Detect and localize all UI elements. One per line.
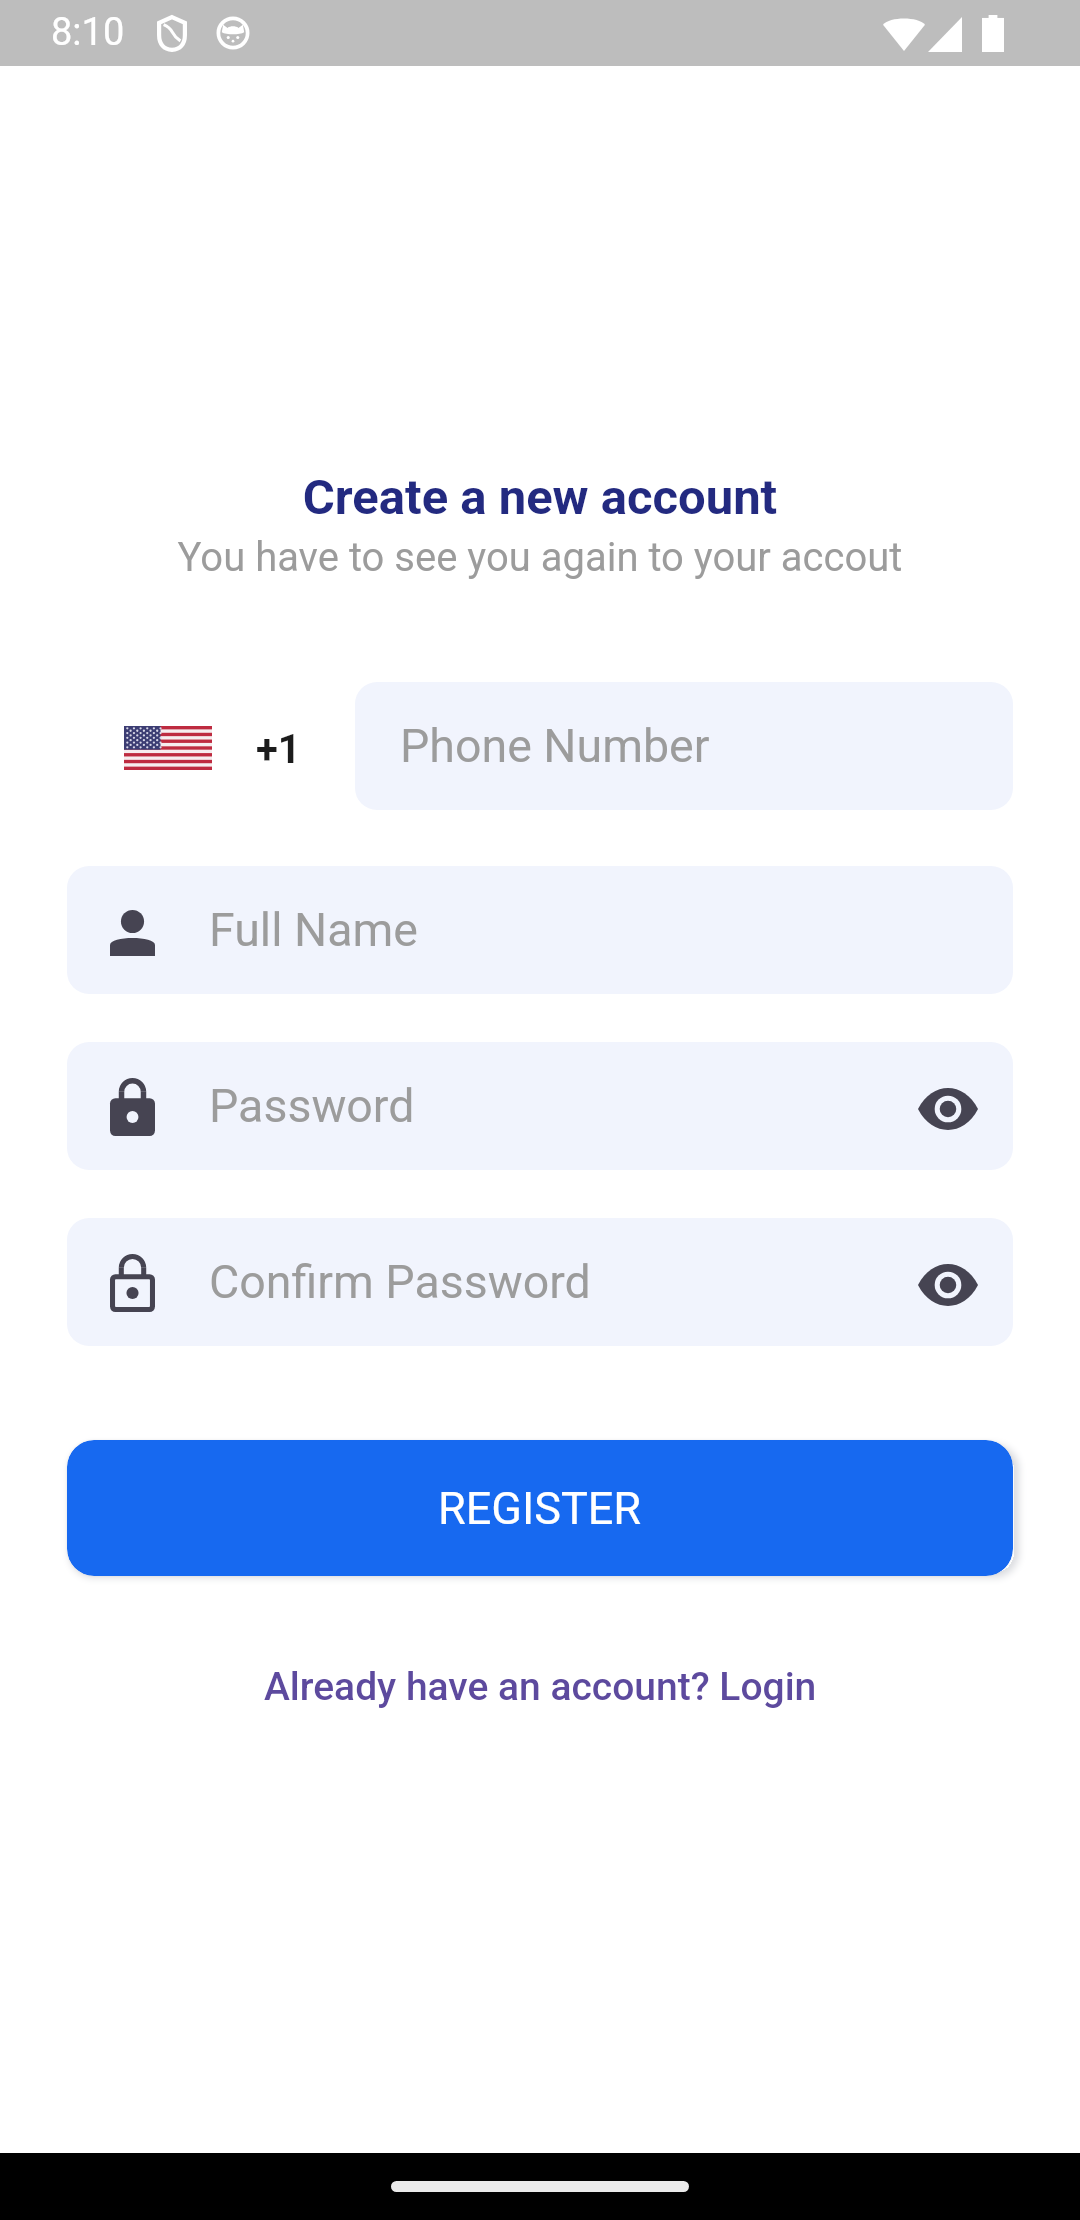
button[interactable]: Already have an account? Login	[240, 1650, 841, 1724]
staticText: Already have an account? Login	[264, 1664, 817, 1710]
button[interactable]: Confirm Password	[67, 1218, 1013, 1346]
button[interactable]: Show password	[908, 1063, 988, 1149]
staticText: Phone Number	[400, 719, 710, 773]
button[interactable]: Full Name	[67, 866, 1013, 994]
button[interactable]: Phone Number	[355, 682, 1013, 810]
staticText: You have to see you again to your accout	[0, 534, 1080, 581]
staticText: Confirm Password	[209, 1255, 591, 1309]
button[interactable]: Password	[67, 1042, 1013, 1170]
button[interactable]: +1	[67, 682, 355, 810]
staticText: REGISTER	[438, 1482, 642, 1535]
staticText: Create a new account	[0, 469, 1080, 526]
button[interactable]: Show password	[908, 1239, 988, 1325]
staticText: 8:10	[51, 10, 125, 55]
staticText: Password	[209, 1079, 415, 1133]
staticText: Full Name	[209, 903, 418, 957]
staticText: +1	[256, 726, 301, 773]
button[interactable]: REGISTER	[67, 1440, 1013, 1576]
